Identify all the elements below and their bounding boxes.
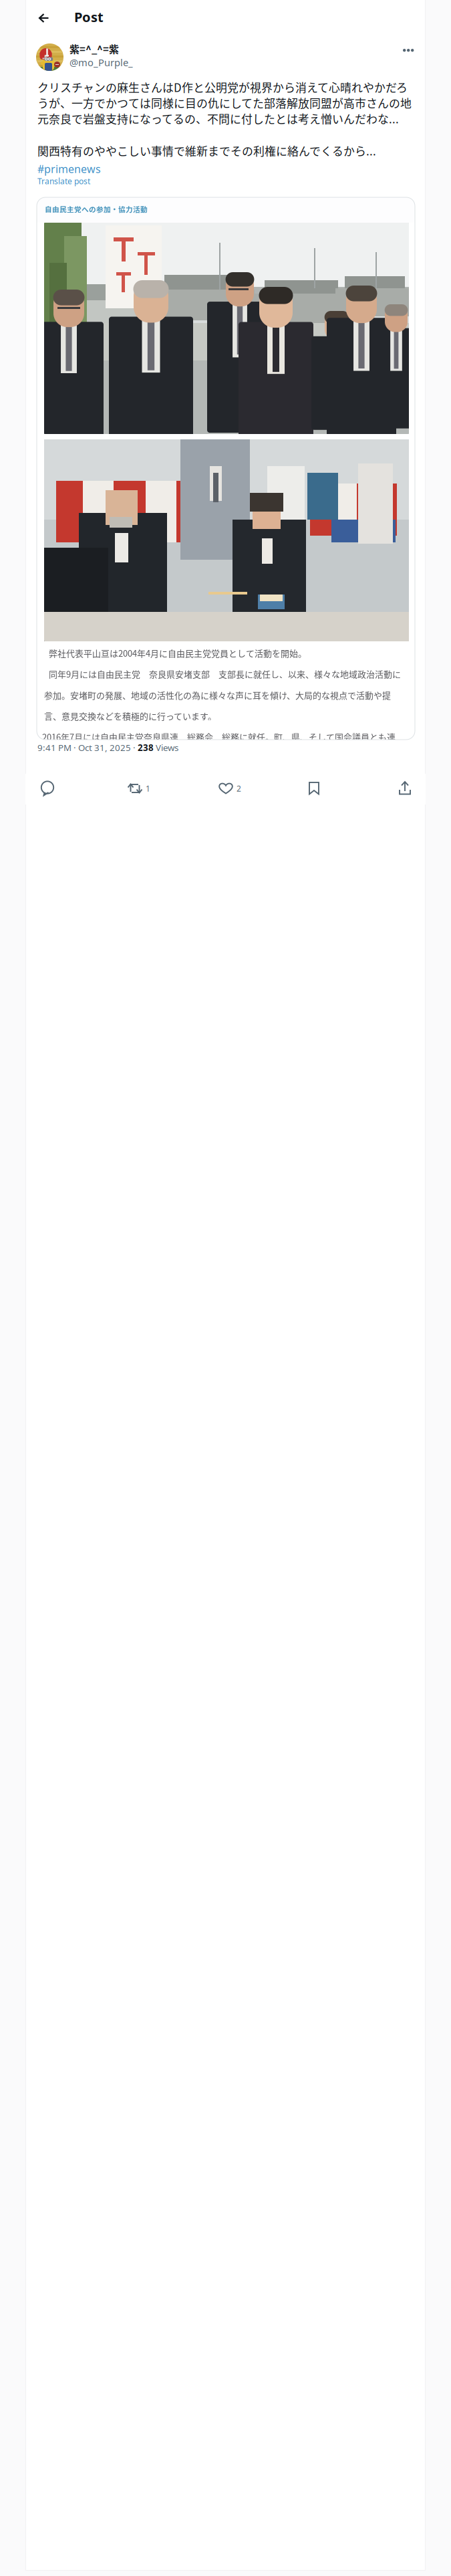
button[interactable]: Reply (33, 774, 62, 803)
button[interactable]: Translate post (37, 176, 90, 187)
staticText: クリスチャンの麻生さんはD作と公明党が視界から消えて心晴れやかだろうが、一方でか… (37, 79, 412, 127)
staticText: Translate post (37, 176, 90, 187)
button[interactable]: Like, 2 likes (218, 774, 247, 803)
staticText: 1 (146, 783, 150, 794)
staticText: 言、意見交換などを積極的に行っています。 (44, 710, 216, 722)
staticText: 関西特有のややこしい事情で維新までその利権に絡んでくるから... (37, 142, 376, 159)
staticText: 238 (138, 742, 154, 753)
staticText: 2 (237, 783, 241, 794)
staticText: Views (154, 742, 178, 753)
button[interactable]: Back (30, 5, 57, 31)
staticText: @mo_Purple_ (69, 56, 133, 69)
staticText: 2016年7月には自由民主党奈良県連 総務会 総務に就任。町、県、そして国会議員… (42, 730, 396, 743)
staticText: 紫=^_^=紫 (69, 41, 119, 56)
button[interactable]: #primenews (37, 162, 101, 176)
button[interactable]: 自由民主党への参加・協力活動 (37, 197, 415, 740)
staticText: 自由民主党への参加・協力活動 (45, 204, 148, 214)
staticText: 弊社代表平山亘は2004年4月に自由民主党党員として活動を開始。 (49, 647, 307, 659)
button[interactable]: Repost, 1 repost (127, 774, 156, 803)
button[interactable]: More options (397, 39, 420, 62)
button[interactable]: 238 (138, 742, 178, 753)
button[interactable]: Bookmark (299, 774, 329, 803)
staticText: #primenews (37, 162, 101, 176)
button[interactable]: Profile photo (36, 43, 63, 71)
staticText: 同年9月には自由民主党 奈良県安堵支部 支部長に就任し、以来、様々な地域政治活動… (49, 668, 401, 680)
staticText: 参加。安堵町の発展、地域の活性化の為に様々な声に耳を傾け、大局的な視点で活動や提 (44, 689, 391, 701)
staticText: Post (74, 8, 104, 26)
staticText: 9:41 PM · Oct 31, 2025 · (37, 742, 138, 753)
button[interactable]: 紫=^_^=紫 (69, 41, 203, 69)
button[interactable]: Share (390, 774, 420, 803)
